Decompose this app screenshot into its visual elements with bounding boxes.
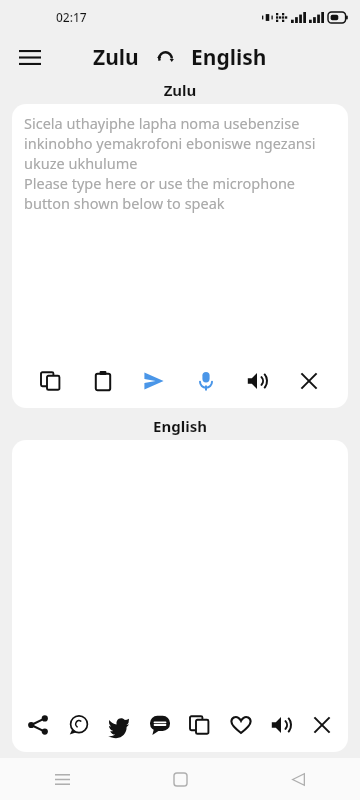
staticText: 02:17 [56,9,87,25]
button[interactable]: Home [162,761,198,797]
button[interactable]: Favorite [223,707,259,743]
button[interactable]: Copy [182,707,218,743]
button[interactable]: Paste [85,363,121,399]
staticText: Zulu [93,43,139,72]
staticText: Zulu [0,80,360,100]
button[interactable]: Clear [304,707,340,743]
button[interactable]: Share [20,707,56,743]
button[interactable]: Menu [10,37,50,77]
button[interactable]: Copy [33,363,69,399]
button[interactable]: Microphone [188,363,224,399]
button[interactable]: Twitter [101,707,137,743]
button[interactable]: Back [280,761,316,797]
staticText: English [0,416,360,436]
button[interactable]: Zulu [89,43,143,72]
button[interactable]: WhatsApp [61,707,97,743]
button[interactable]: Swap languages [151,44,179,72]
button[interactable]: SMS [142,707,178,743]
button[interactable]: Recents [44,761,80,797]
button[interactable]: Clear [291,363,327,399]
staticText: Sicela uthayiphe lapha noma usebenzise i… [24,113,336,354]
button[interactable]: English [187,43,271,72]
button[interactable]: Translate [136,363,172,399]
button[interactable]: Speak [239,363,275,399]
staticText: English [191,43,267,72]
button[interactable]: Speak [263,707,299,743]
